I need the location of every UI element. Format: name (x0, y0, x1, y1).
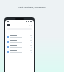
staticText: Chat anytime, anywhere (18, 6, 46, 9)
